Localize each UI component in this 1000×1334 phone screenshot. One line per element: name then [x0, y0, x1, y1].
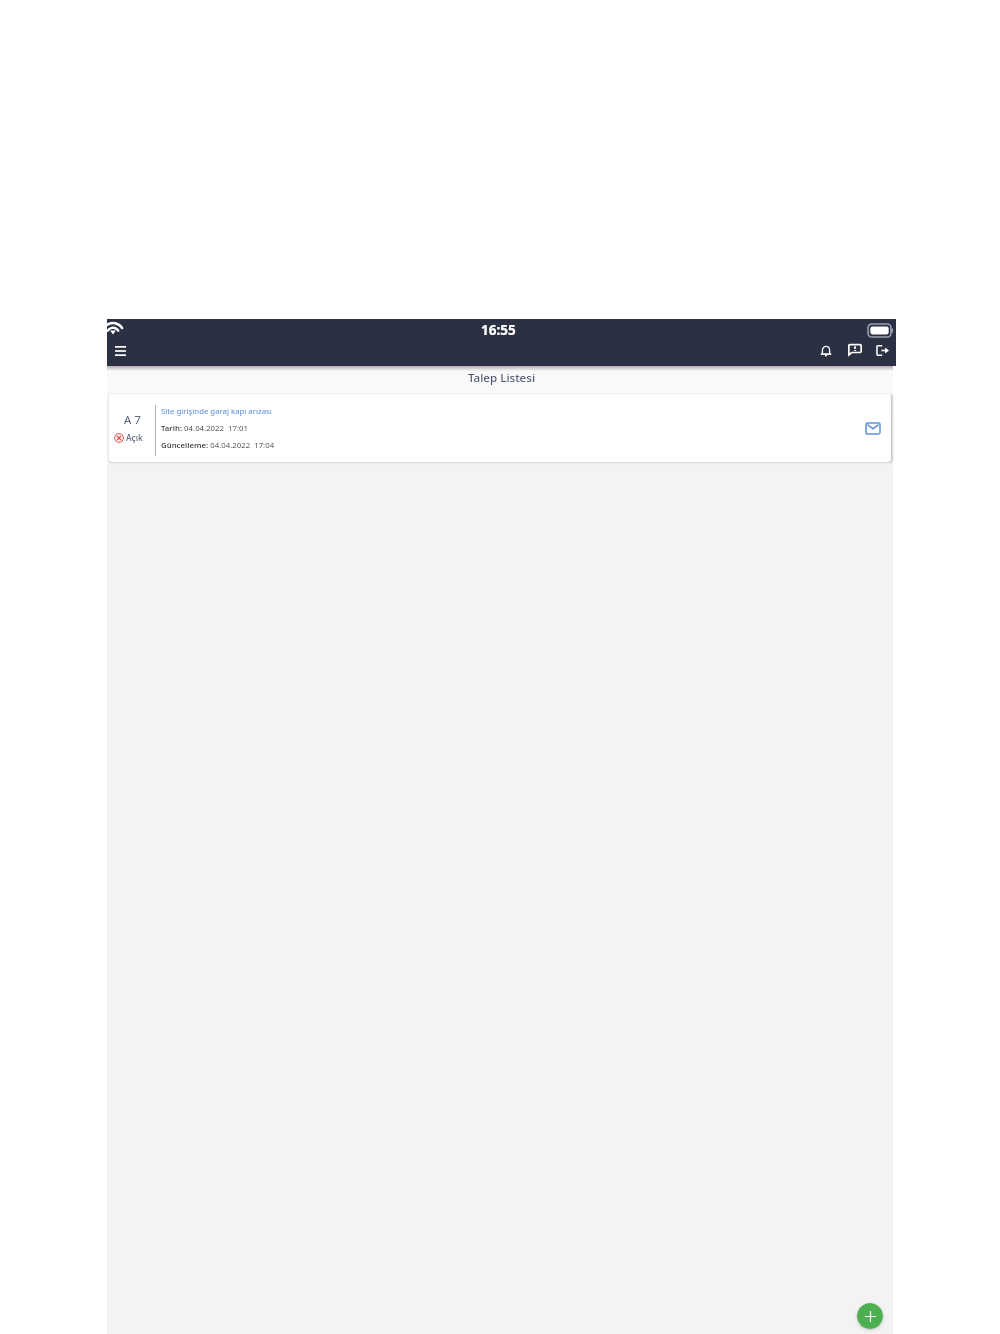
staticText: Tarih: 04.04.2022 17:01 [161, 423, 248, 434]
staticText: Güncelleme: 04.04.2022 17:04 [161, 440, 275, 451]
button[interactable]: A 7 [109, 394, 891, 462]
staticText: A 7 [124, 412, 141, 428]
staticText: Açık [126, 432, 143, 444]
button[interactable]: Mail [855, 410, 891, 446]
button[interactable]: Add [857, 1303, 883, 1329]
button[interactable]: Messages [842, 337, 868, 363]
button[interactable]: Menu [108, 339, 132, 363]
staticText: 16:55 [481, 321, 516, 339]
button[interactable]: Notifications [817, 338, 842, 363]
staticText: Talep Listesi [468, 370, 536, 386]
button[interactable]: Logout [868, 338, 893, 363]
staticText: Site girişinde garaj kapı arızası [161, 406, 272, 417]
